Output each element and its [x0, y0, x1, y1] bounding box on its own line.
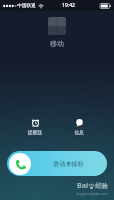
staticText: 19:42 [62, 2, 75, 9]
other: Caller photo [48, 17, 66, 35]
button[interactable]: Message [58, 117, 100, 137]
button[interactable]: Slide to answer [7, 151, 107, 176]
staticText: 信息 [74, 130, 84, 136]
staticText: jingyan.baidu.com [76, 191, 108, 196]
staticText: 滑动来接听 [53, 160, 84, 168]
staticText: Bai [77, 181, 88, 191]
staticText: 提醒我 [28, 130, 42, 136]
staticText: 移动 [50, 39, 64, 48]
staticText: 经验 [95, 182, 108, 190]
button[interactable]: Remind me [14, 117, 56, 137]
staticText: 中国联通 [17, 3, 36, 9]
